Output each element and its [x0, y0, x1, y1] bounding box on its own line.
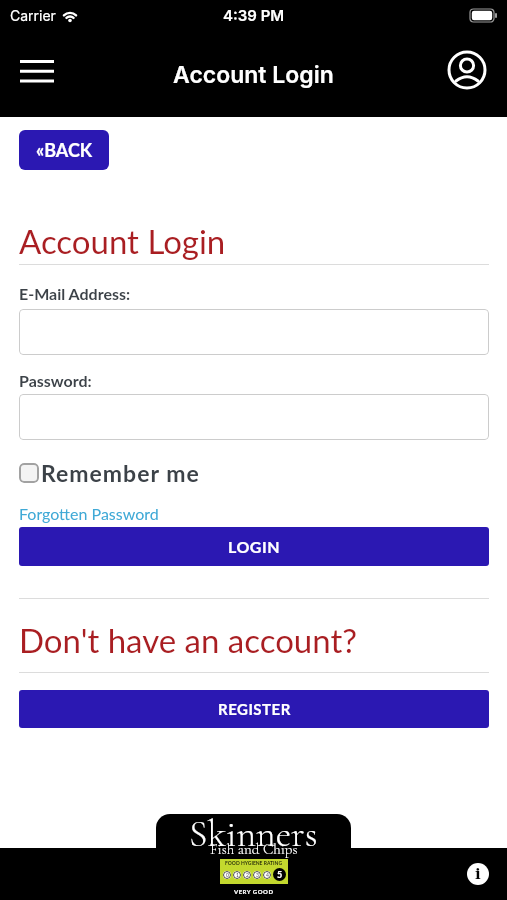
button[interactable]	[19, 394, 489, 440]
staticText: Carrier	[10, 7, 56, 24]
button[interactable]: REGISTER	[19, 690, 489, 728]
staticText: 3	[256, 872, 259, 878]
staticText: 1	[236, 872, 239, 878]
button[interactable]: «BACK	[19, 130, 109, 170]
button[interactable]: LOGIN	[19, 527, 489, 566]
staticText: 4:39 PM	[223, 6, 285, 24]
staticText: Fish and Chips	[210, 840, 298, 858]
staticText: «BACK	[36, 139, 93, 161]
staticText: VERY GOOD	[234, 888, 274, 895]
staticText: 4	[266, 872, 269, 878]
staticText: Don't have an account?	[19, 620, 358, 660]
staticText: E-Mail Address:	[19, 284, 131, 303]
staticText: 2	[246, 872, 249, 878]
button[interactable]: Skinners	[156, 814, 351, 900]
staticText: Skinners	[189, 814, 318, 857]
staticText: Account Login	[19, 221, 226, 261]
staticText: Account Login	[173, 61, 334, 89]
staticText: FOOD HYGIENE RATING	[225, 860, 283, 866]
button[interactable]: i	[467, 863, 489, 885]
button[interactable]	[19, 309, 489, 355]
staticText: 5	[277, 869, 283, 880]
staticText: REGISTER	[218, 700, 291, 718]
button[interactable]	[442, 45, 492, 95]
staticText: Remember me	[41, 459, 200, 487]
staticText: Password:	[19, 371, 92, 390]
staticText: 0	[226, 872, 229, 878]
button[interactable]	[13, 47, 61, 95]
button[interactable]: Forgotten Password	[19, 504, 159, 523]
staticText: LOGIN	[228, 537, 281, 556]
button[interactable]: Remember me	[19, 459, 200, 487]
staticText: i	[475, 865, 481, 883]
